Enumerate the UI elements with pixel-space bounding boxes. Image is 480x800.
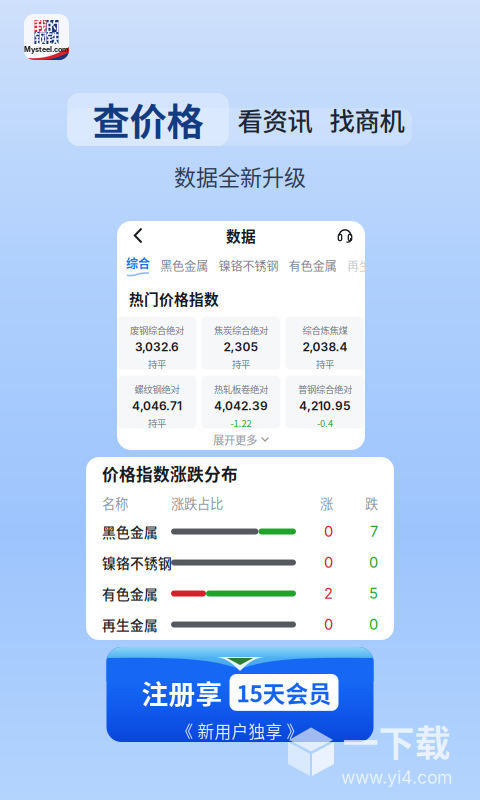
staticText: 看资讯: [237, 101, 312, 138]
staticText: -1.22: [230, 416, 251, 430]
staticText: 名称: [102, 493, 128, 513]
button[interactable]: 查价格: [67, 93, 229, 146]
staticText: 持平: [232, 357, 250, 371]
staticText: 焦炭综合绝对: [214, 323, 268, 337]
staticText: 展开更多: [213, 431, 257, 448]
staticText: 持平: [148, 357, 166, 371]
staticText: 综合炼焦煤: [302, 323, 347, 337]
button[interactable]: 综合: [126, 254, 150, 277]
button[interactable]: 注册享: [106, 647, 373, 742]
staticText: 4,042.39: [214, 399, 268, 413]
staticText: 2,305: [223, 340, 258, 354]
staticText: 镍铬不锈钢: [102, 553, 172, 572]
button[interactable]: 找商机: [321, 93, 413, 146]
staticText: 螺纹钢绝对: [134, 382, 179, 396]
staticText: 4,046.71: [132, 399, 182, 413]
staticText: 热门价格指数: [129, 288, 219, 309]
staticText: www.yi4.com: [341, 767, 452, 788]
staticText: 一下载: [342, 715, 450, 767]
staticText: 注册享: [141, 673, 222, 712]
staticText: 3,032.6: [135, 340, 179, 354]
button[interactable]: 看资讯: [229, 93, 321, 146]
staticText: 持平: [316, 357, 334, 371]
staticText: 综合: [126, 254, 150, 272]
staticText: 价格指数涨跌分布: [102, 461, 238, 485]
staticText: 的: [46, 16, 59, 36]
staticText: 再生金: [347, 257, 383, 274]
staticText: 普钢综合绝对: [298, 382, 352, 396]
staticText: 黑色金属: [160, 257, 208, 274]
staticText: 0: [324, 616, 333, 633]
button[interactable]: 有色金属: [289, 257, 337, 274]
staticText: 0: [369, 616, 378, 633]
staticText: 0: [324, 554, 333, 571]
button[interactable]: 客服: [336, 226, 354, 244]
staticText: 找商机: [329, 101, 404, 138]
staticText: Mysteel.com: [24, 45, 69, 54]
staticText: 4,210.95: [299, 399, 351, 413]
button[interactable]: 展开更多: [117, 428, 365, 450]
staticText: 15天会员: [236, 676, 331, 709]
staticText: 涨跌占比: [171, 493, 223, 513]
staticText: -0.4: [317, 416, 333, 430]
staticText: 查价格: [92, 92, 203, 147]
staticText: 《 新用户独享 》: [176, 719, 303, 743]
staticText: 2,038.4: [302, 340, 347, 354]
staticText: 涨: [320, 493, 333, 513]
staticText: 有色金属: [289, 257, 337, 274]
staticText: 数据全新升级: [174, 160, 306, 192]
staticText: 2: [324, 585, 333, 602]
staticText: 黑色金属: [102, 522, 158, 541]
staticText: 5: [369, 585, 378, 602]
button[interactable]: 返回: [128, 223, 149, 248]
staticText: 跌: [365, 493, 378, 513]
staticText: 0: [369, 554, 378, 571]
button[interactable]: 镍铬不锈钢: [218, 257, 278, 274]
staticText: 数据: [226, 225, 256, 246]
staticText: 我: [34, 16, 47, 36]
staticText: 持平: [148, 416, 166, 430]
staticText: 0: [324, 523, 333, 540]
staticText: 再生金属: [102, 615, 158, 634]
staticText: 有色金属: [102, 584, 158, 603]
staticText: 废钢综合绝对: [130, 323, 184, 337]
staticText: 热轧板卷绝对: [214, 382, 268, 396]
staticText: 镍铬不锈钢: [218, 257, 278, 274]
staticText: 铁: [46, 28, 59, 48]
button[interactable]: 黑色金属: [160, 257, 208, 274]
staticText: 7: [370, 523, 378, 540]
staticText: 钢: [34, 28, 47, 48]
